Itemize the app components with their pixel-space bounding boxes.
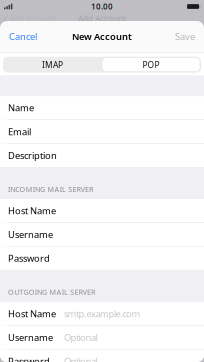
staticText: Email [8,125,31,138]
staticText: Description [8,149,57,162]
staticText: Add Account [9,13,57,24]
button[interactable]: Username [0,326,204,349]
button[interactable]: Username [0,223,204,246]
button[interactable]: Name [0,96,204,119]
staticText: Host Name [8,307,56,320]
staticText: Username [8,228,53,241]
staticText: New Account [72,30,132,43]
staticText: Password [8,252,50,264]
button[interactable]: Email [0,120,204,143]
button[interactable]: Password [0,247,204,270]
button[interactable]: Password [0,349,204,362]
staticText: smtp.example.com [64,307,140,320]
button[interactable]: Save [166,22,204,50]
button[interactable]: Description [0,144,204,167]
staticText: 10.00 [91,1,113,12]
staticText: OUTGOING MAIL SERVER [8,287,95,297]
staticText: Cancel [9,30,37,43]
staticText: Host Name [8,204,56,217]
staticText: POP [142,59,159,70]
staticText: Name [8,102,34,114]
staticText: Username [8,331,53,344]
button[interactable]: Host Name [0,302,204,325]
staticText: IMAP [42,59,63,70]
staticText: Password [8,355,50,362]
staticText: Optional [64,355,97,362]
staticText: INCOMING MAIL SERVER [8,184,93,194]
button[interactable]: POP [102,57,201,73]
staticText: Optional [64,331,97,344]
staticText: Save [175,30,195,43]
staticText: Add Account [78,13,126,24]
button[interactable]: IMAP [3,57,102,73]
button[interactable]: Cancel [0,22,46,50]
button[interactable]: Host Name [0,199,204,222]
